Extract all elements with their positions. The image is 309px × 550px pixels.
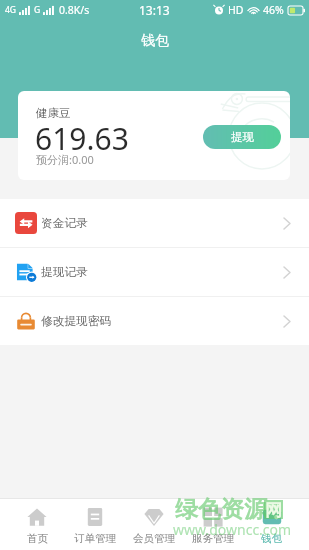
staticText: 13:13: [139, 2, 170, 18]
staticText: 绿色资源: [175, 495, 267, 524]
button[interactable]: 订单管理: [66, 499, 124, 550]
staticText: 资金记录: [41, 216, 88, 231]
button[interactable]: 提现记录: [0, 248, 309, 296]
staticText: www.downcc.com: [173, 520, 292, 539]
button[interactable]: 资金记录: [0, 199, 309, 247]
button[interactable]: 服务管理: [183, 499, 242, 550]
staticText: 订单管理: [74, 532, 116, 545]
staticText: HD: [228, 3, 244, 17]
staticText: 钱包: [141, 32, 169, 50]
staticText: 0.8K/s: [59, 3, 90, 17]
staticText: 提现记录: [41, 265, 88, 280]
staticText: G: [34, 4, 41, 16]
staticText: 首页: [27, 532, 48, 545]
staticText: 网: [265, 500, 282, 519]
staticText: 会员管理: [133, 532, 175, 545]
button[interactable]: 提现: [203, 125, 281, 149]
button[interactable]: 会员管理: [124, 499, 183, 550]
staticText: 服务管理: [192, 532, 234, 545]
staticText: 46%: [263, 3, 284, 17]
button[interactable]: 修改提现密码: [0, 297, 309, 345]
staticText: 修改提现密码: [41, 314, 112, 329]
button[interactable]: 首页: [8, 499, 66, 550]
staticText: 619.63: [35, 118, 129, 159]
staticText: 健康豆: [36, 106, 71, 120]
button[interactable]: 钱包: [242, 499, 301, 550]
staticText: 预分润:0.00: [36, 152, 94, 167]
staticText: 钱包: [261, 532, 282, 545]
staticText: 4G: [5, 4, 17, 16]
staticText: 提现: [231, 130, 254, 144]
